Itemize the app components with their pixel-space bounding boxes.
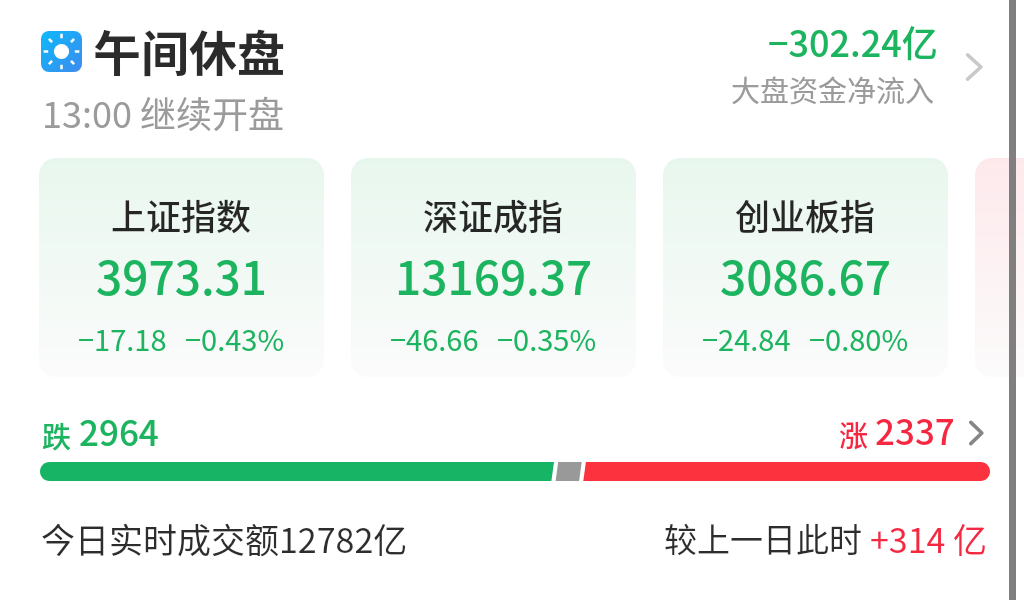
staticText: 2964 xyxy=(79,405,159,456)
button[interactable]: 北证50 xyxy=(975,158,1024,377)
staticText: −0.80% xyxy=(809,317,909,359)
staticText: 上证指数 xyxy=(111,189,252,240)
staticText: −46.66 xyxy=(390,317,479,359)
button[interactable]: 创业板指 xyxy=(663,158,948,377)
other: More details xyxy=(963,51,986,83)
staticText: +314 亿 xyxy=(870,514,988,563)
staticText: 13:00 继续开盘 xyxy=(42,86,284,138)
button[interactable]: 上证指数 xyxy=(39,158,324,377)
other: Advancers and decliners xyxy=(40,462,990,481)
staticText: −17.18 xyxy=(78,317,167,359)
button[interactable]: 跌 xyxy=(30,398,994,492)
staticText: −0.43% xyxy=(185,317,285,359)
staticText: 跌 xyxy=(42,414,72,456)
staticText: 创业板指 xyxy=(735,189,876,240)
staticText: 13169.37 xyxy=(395,242,593,309)
staticText: 午间休盘 xyxy=(93,15,286,85)
staticText: 3086.67 xyxy=(720,242,892,309)
other: More details xyxy=(967,419,986,447)
staticText: 涨 xyxy=(839,413,869,455)
staticText: 今日实时成交额12782亿 xyxy=(41,514,408,563)
button[interactable]: Market session status xyxy=(30,14,310,132)
staticText: −302.24亿 xyxy=(768,15,938,67)
button[interactable]: 深证成指 xyxy=(351,158,636,377)
staticText: 2337 xyxy=(875,404,955,455)
other: Market session status xyxy=(41,31,82,72)
staticText: −24.84 xyxy=(702,317,791,359)
staticText: −0.35% xyxy=(497,317,597,359)
staticText: 大盘资金净流入 xyxy=(731,68,935,110)
staticText: 深证成指 xyxy=(423,189,564,240)
button[interactable]: −302.24亿 xyxy=(700,18,1000,118)
staticText: 3973.31 xyxy=(96,242,268,309)
staticText: 较上一日此时 xyxy=(664,514,870,562)
